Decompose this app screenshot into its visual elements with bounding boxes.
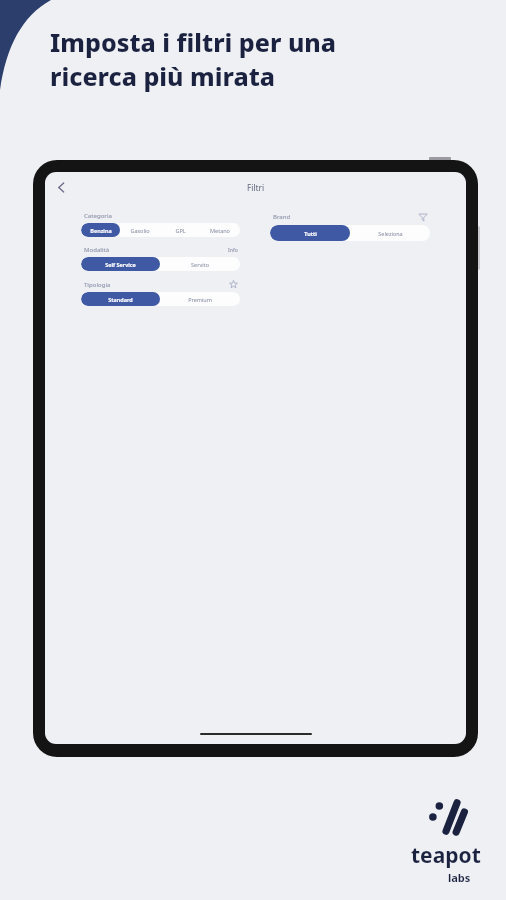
staticText: Tutti	[304, 230, 317, 237]
button[interactable]: Tutti	[270, 225, 350, 241]
button[interactable]: Preferiti	[229, 280, 238, 289]
staticText: Self Service	[105, 261, 136, 268]
button[interactable]: GPL	[160, 223, 200, 237]
staticText: GPL	[175, 227, 186, 234]
staticText: Gasolio	[130, 227, 150, 234]
staticText: Brand	[273, 213, 291, 221]
staticText: labs	[448, 870, 471, 884]
staticText: Imposta i filtri per una	[50, 25, 337, 59]
button[interactable]: Servito	[160, 257, 240, 271]
staticText: Filtri	[247, 182, 265, 193]
staticText: Standard	[108, 296, 133, 303]
button[interactable]: Standard	[81, 292, 160, 306]
button[interactable]: Metano	[200, 223, 240, 237]
button[interactable]: Seleziona	[350, 225, 430, 241]
staticText: Benzina	[90, 227, 112, 234]
staticText: ricerca più mirata	[50, 59, 276, 93]
button[interactable]: Filtra brand	[418, 212, 428, 222]
staticText: teapot	[411, 841, 481, 870]
staticText: Seleziona	[378, 230, 403, 237]
staticText: Tipologia	[84, 281, 111, 289]
button[interactable]: Benzina	[81, 223, 120, 237]
button[interactable]: Self Service	[81, 257, 160, 271]
button[interactable]: Premium	[160, 292, 240, 306]
staticText: Premium	[188, 296, 212, 303]
staticText: Servito	[191, 261, 209, 268]
staticText: Metano	[210, 227, 230, 234]
staticText: Info	[228, 247, 238, 254]
button[interactable]: Gasolio	[120, 223, 160, 237]
staticText: Modalità	[84, 246, 110, 254]
staticText: Categoria	[84, 212, 112, 220]
button[interactable]: Info	[228, 247, 238, 254]
button[interactable]: Indietro	[50, 176, 72, 198]
